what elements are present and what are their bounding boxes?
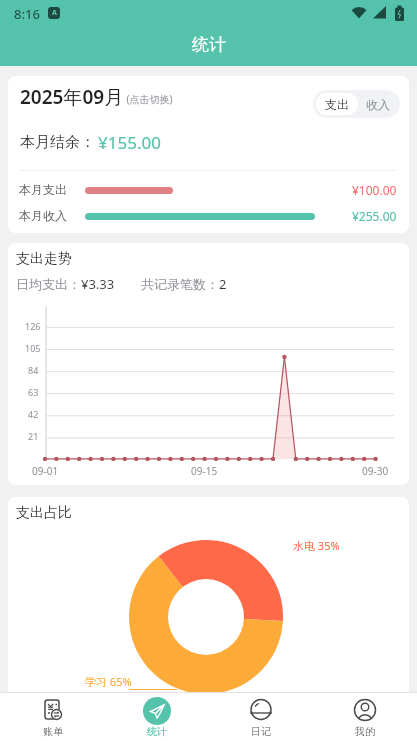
staticText: ¥100.00 [352, 182, 397, 198]
button[interactable]: 我的 [313, 693, 417, 741]
button[interactable]: 收入 [358, 93, 397, 115]
staticText: 日均支出： [16, 276, 81, 292]
staticText: (点击切换) [124, 92, 173, 106]
staticText: 84 [28, 364, 39, 376]
staticText: 统计 [147, 725, 167, 738]
staticText: ¥155.00 [98, 131, 161, 154]
staticText: 我的 [355, 725, 375, 738]
staticText: A [52, 8, 57, 18]
staticText: 收入 [366, 97, 390, 112]
staticText: 21 [28, 430, 39, 442]
staticText: 支出走势 [16, 250, 72, 268]
staticText: 126 [25, 320, 41, 332]
button[interactable]: 账单 [0, 693, 105, 741]
button[interactable]: 支出 [316, 93, 358, 115]
staticText: 09-15 [191, 464, 218, 478]
staticText: 105 [25, 342, 41, 354]
staticText: 42 [28, 408, 39, 420]
staticText: 支出 [325, 97, 349, 112]
staticText: 本月支出 [19, 182, 67, 197]
button[interactable]: 日记 [209, 693, 313, 741]
staticText: 日记 [251, 725, 271, 738]
staticText: 09-01 [32, 464, 59, 478]
staticText: ¥3.33 [81, 275, 115, 293]
staticText: 支出占比 [16, 504, 72, 522]
staticText: 学习 65% [85, 674, 132, 689]
staticText: 本月结余： [20, 133, 95, 152]
staticText: 统计 [192, 34, 226, 55]
staticText: 2025年09月 [20, 84, 124, 110]
staticText: 09-30 [362, 464, 389, 478]
staticText: 8:16 [14, 5, 40, 23]
staticText: 共记录笔数： [141, 276, 219, 292]
staticText: 63 [28, 386, 39, 398]
staticText: 本月收入 [19, 208, 67, 223]
button[interactable]: 统计 [105, 693, 209, 741]
staticText: 账单 [43, 725, 63, 738]
staticText: 2 [219, 275, 227, 293]
staticText: ¥255.00 [352, 208, 397, 224]
staticText: 水电 35% [293, 538, 340, 553]
